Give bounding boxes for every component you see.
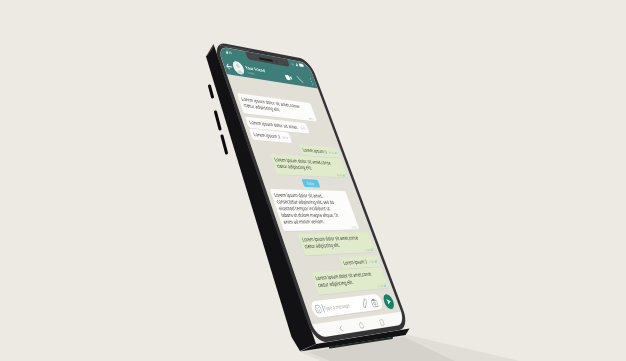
button[interactable]: Send bbox=[380, 299, 401, 320]
button[interactable]: Recents bbox=[378, 319, 391, 330]
button[interactable]: Contact profile bbox=[236, 66, 252, 82]
button[interactable]: Video call bbox=[294, 76, 305, 87]
button[interactable]: Home bbox=[357, 323, 370, 334]
button[interactable]: Call bbox=[305, 81, 315, 91]
button[interactable]: More options bbox=[314, 84, 322, 96]
button[interactable]: Type a message bbox=[310, 306, 378, 320]
button[interactable]: Back bbox=[218, 58, 232, 71]
button[interactable]: Back bbox=[335, 326, 348, 337]
